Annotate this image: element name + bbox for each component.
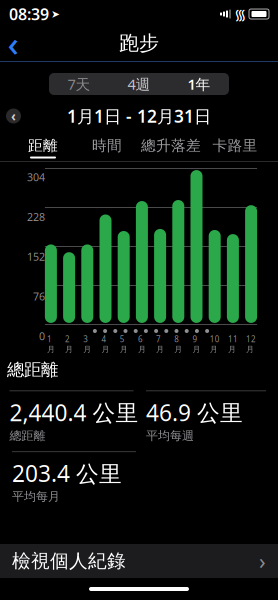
staticText: 距離 [28, 136, 58, 154]
staticText: 1年 [187, 74, 210, 94]
staticText: 1月 [47, 334, 55, 354]
staticText: 跑步 [119, 31, 159, 55]
button[interactable]: 總升落差 [139, 135, 203, 161]
staticText: 10月 [210, 334, 220, 354]
staticText: 46.9 公里 [146, 397, 243, 427]
staticText: 平均每週 [146, 428, 194, 443]
staticText: 5月 [120, 334, 128, 354]
staticText: 7天 [67, 74, 90, 94]
staticText: 152 [27, 249, 45, 264]
button[interactable]: 卡路里 [203, 135, 267, 161]
staticText: 2月 [65, 334, 73, 354]
button[interactable]: 1年 [169, 73, 229, 95]
staticText: 203.4 公里 [12, 458, 122, 488]
staticText: ➤ [51, 8, 60, 20]
button[interactable]: 距離 [11, 135, 75, 161]
staticText: ᯾ [234, 4, 246, 24]
staticText: 時間 [92, 136, 122, 154]
button[interactable]: 上一年 [6, 108, 21, 123]
staticText: 總升落差 [141, 136, 201, 154]
staticText: 228 [27, 210, 45, 224]
staticText: 3月 [83, 334, 91, 354]
staticText: 1月1日 - 12月31日 [67, 104, 211, 127]
staticText: 6月 [138, 334, 146, 354]
staticText: 總距離 [9, 428, 45, 443]
staticText: 304 [27, 170, 45, 184]
staticText: 11月 [228, 334, 238, 354]
staticText: 平均每月 [12, 489, 60, 504]
staticText: 76 [33, 289, 45, 303]
staticText: 總距離 [7, 359, 58, 380]
staticText: 12月 [246, 334, 256, 354]
staticText: 7月 [156, 334, 164, 354]
staticText: 08:39 [9, 3, 49, 25]
button[interactable]: 檢視個人紀錄 [0, 544, 278, 578]
staticText: 9月 [192, 334, 200, 354]
staticText: ‹ [7, 20, 18, 66]
staticText: › [259, 547, 266, 575]
staticText: 4週 [127, 74, 150, 94]
button[interactable]: 返回 [0, 28, 31, 58]
staticText: ‹ [11, 107, 16, 125]
button[interactable]: 時間 [75, 135, 139, 161]
staticText: 0 [39, 329, 45, 343]
staticText: 2,440.4 公里 [9, 397, 138, 427]
staticText: 卡路里 [212, 136, 257, 154]
staticText: 8月 [174, 334, 182, 354]
button[interactable]: 4週 [109, 73, 169, 95]
button[interactable]: 7天 [49, 73, 109, 95]
staticText: 檢視個人紀錄 [12, 549, 126, 572]
staticText: 4月 [101, 334, 109, 354]
